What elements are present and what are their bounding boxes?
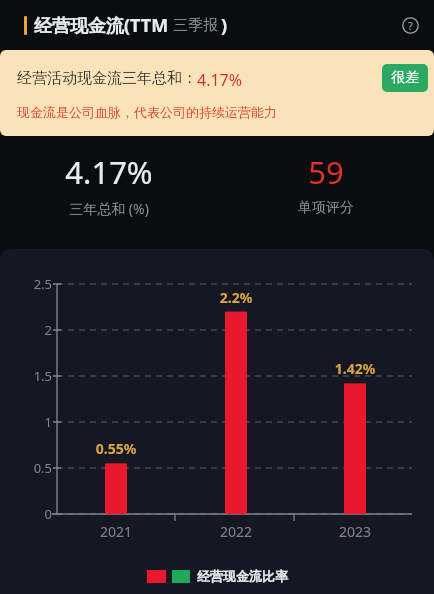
staticText: 单项评分 xyxy=(298,199,354,217)
staticText: 三年总和 (%) xyxy=(69,199,149,218)
button[interactable]: 经营活动现金流三年总和： xyxy=(0,50,434,136)
staticText: 经营现金流(TTM xyxy=(34,13,169,38)
staticText: 59 xyxy=(308,151,344,193)
staticText: 2 xyxy=(14,321,52,339)
staticText: 4.17% xyxy=(197,69,243,91)
staticText: 经营活动现金流三年总和： xyxy=(17,69,197,88)
staticText: 2.2% xyxy=(206,288,266,307)
staticText: 2021 xyxy=(86,522,146,541)
staticText: 0 xyxy=(14,505,52,523)
staticText: 1.42% xyxy=(325,359,385,378)
staticText: ? xyxy=(408,18,413,33)
staticText: 经营现金流比率 xyxy=(197,568,288,584)
staticText: 1 xyxy=(14,413,52,431)
staticText: 2023 xyxy=(325,522,385,541)
staticText: 4.17% xyxy=(65,151,153,193)
staticText: 很差 xyxy=(391,69,419,87)
staticText: 1.5 xyxy=(14,367,52,385)
staticText: 0.5 xyxy=(14,459,52,477)
button[interactable]: Help xyxy=(392,7,428,43)
staticText: 2022 xyxy=(206,522,266,541)
staticText: 三季报 xyxy=(173,16,218,35)
staticText: 现金流是公司血脉，代表公司的持续运营能力 xyxy=(17,104,277,120)
button[interactable]: 很差 xyxy=(382,64,428,92)
button[interactable]: 4.17% xyxy=(0,136,217,218)
staticText: 2.5 xyxy=(14,275,52,293)
button[interactable]: 59 xyxy=(217,136,434,217)
staticText: 0.55% xyxy=(86,439,146,458)
staticText: ) xyxy=(221,13,228,38)
